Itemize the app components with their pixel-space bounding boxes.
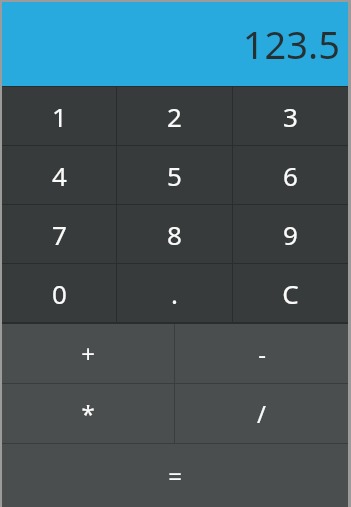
staticText: 0 bbox=[52, 276, 67, 311]
staticText: 4 bbox=[52, 158, 67, 193]
button[interactable]: 7 bbox=[2, 205, 116, 263]
button[interactable]: 0 bbox=[2, 264, 116, 322]
staticText: 123.5 bbox=[242, 18, 340, 70]
staticText: 7 bbox=[52, 217, 67, 252]
staticText: = bbox=[168, 459, 182, 492]
button[interactable]: . bbox=[117, 264, 232, 322]
button[interactable]: 123.5 bbox=[2, 2, 348, 86]
button[interactable]: 9 bbox=[233, 205, 348, 263]
button[interactable]: = bbox=[2, 444, 348, 507]
button[interactable]: 8 bbox=[117, 205, 232, 263]
staticText: C bbox=[282, 276, 299, 311]
button[interactable]: C bbox=[233, 264, 348, 322]
button[interactable]: - bbox=[175, 324, 348, 383]
button[interactable]: 2 bbox=[117, 87, 232, 145]
button[interactable]: 3 bbox=[233, 87, 348, 145]
button[interactable]: 1 bbox=[2, 87, 116, 145]
button[interactable]: + bbox=[2, 324, 174, 383]
staticText: / bbox=[257, 397, 266, 430]
staticText: 8 bbox=[167, 217, 182, 252]
staticText: 5 bbox=[167, 158, 182, 193]
staticText: 1 bbox=[52, 99, 67, 134]
staticText: 6 bbox=[283, 158, 298, 193]
staticText: 2 bbox=[167, 99, 182, 134]
button[interactable]: * bbox=[2, 384, 174, 443]
button[interactable]: 4 bbox=[2, 146, 116, 204]
staticText: . bbox=[171, 276, 178, 311]
staticText: + bbox=[81, 337, 95, 370]
staticText: - bbox=[258, 337, 266, 370]
button[interactable]: 6 bbox=[233, 146, 348, 204]
staticText: * bbox=[81, 397, 95, 430]
staticText: 9 bbox=[283, 217, 298, 252]
button[interactable]: 5 bbox=[117, 146, 232, 204]
button[interactable]: / bbox=[175, 384, 348, 443]
staticText: 3 bbox=[283, 99, 298, 134]
